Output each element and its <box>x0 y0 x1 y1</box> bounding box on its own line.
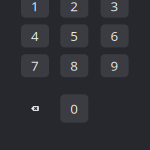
staticText: 3 <box>111 0 119 15</box>
staticText: 5 <box>70 27 78 45</box>
button[interactable]: Delete <box>21 94 49 123</box>
staticText: 8 <box>70 57 78 74</box>
staticText: 9 <box>111 57 119 74</box>
staticText: 0 <box>70 100 78 117</box>
button[interactable]: 1 <box>21 0 49 18</box>
button[interactable]: 8 <box>60 54 88 77</box>
staticText: 2 <box>70 0 78 15</box>
staticText: 1 <box>31 0 39 15</box>
button[interactable]: 7 <box>21 54 49 77</box>
button[interactable]: 6 <box>101 24 129 47</box>
button[interactable]: 0 <box>60 94 88 123</box>
staticText: 4 <box>31 27 39 45</box>
button[interactable]: 3 <box>101 0 129 18</box>
button[interactable]: 9 <box>101 54 129 77</box>
button[interactable]: 2 <box>60 0 88 18</box>
button[interactable]: 4 <box>21 24 49 47</box>
button[interactable]: 5 <box>60 24 88 47</box>
staticText: 7 <box>31 57 39 74</box>
staticText: 6 <box>111 27 119 45</box>
